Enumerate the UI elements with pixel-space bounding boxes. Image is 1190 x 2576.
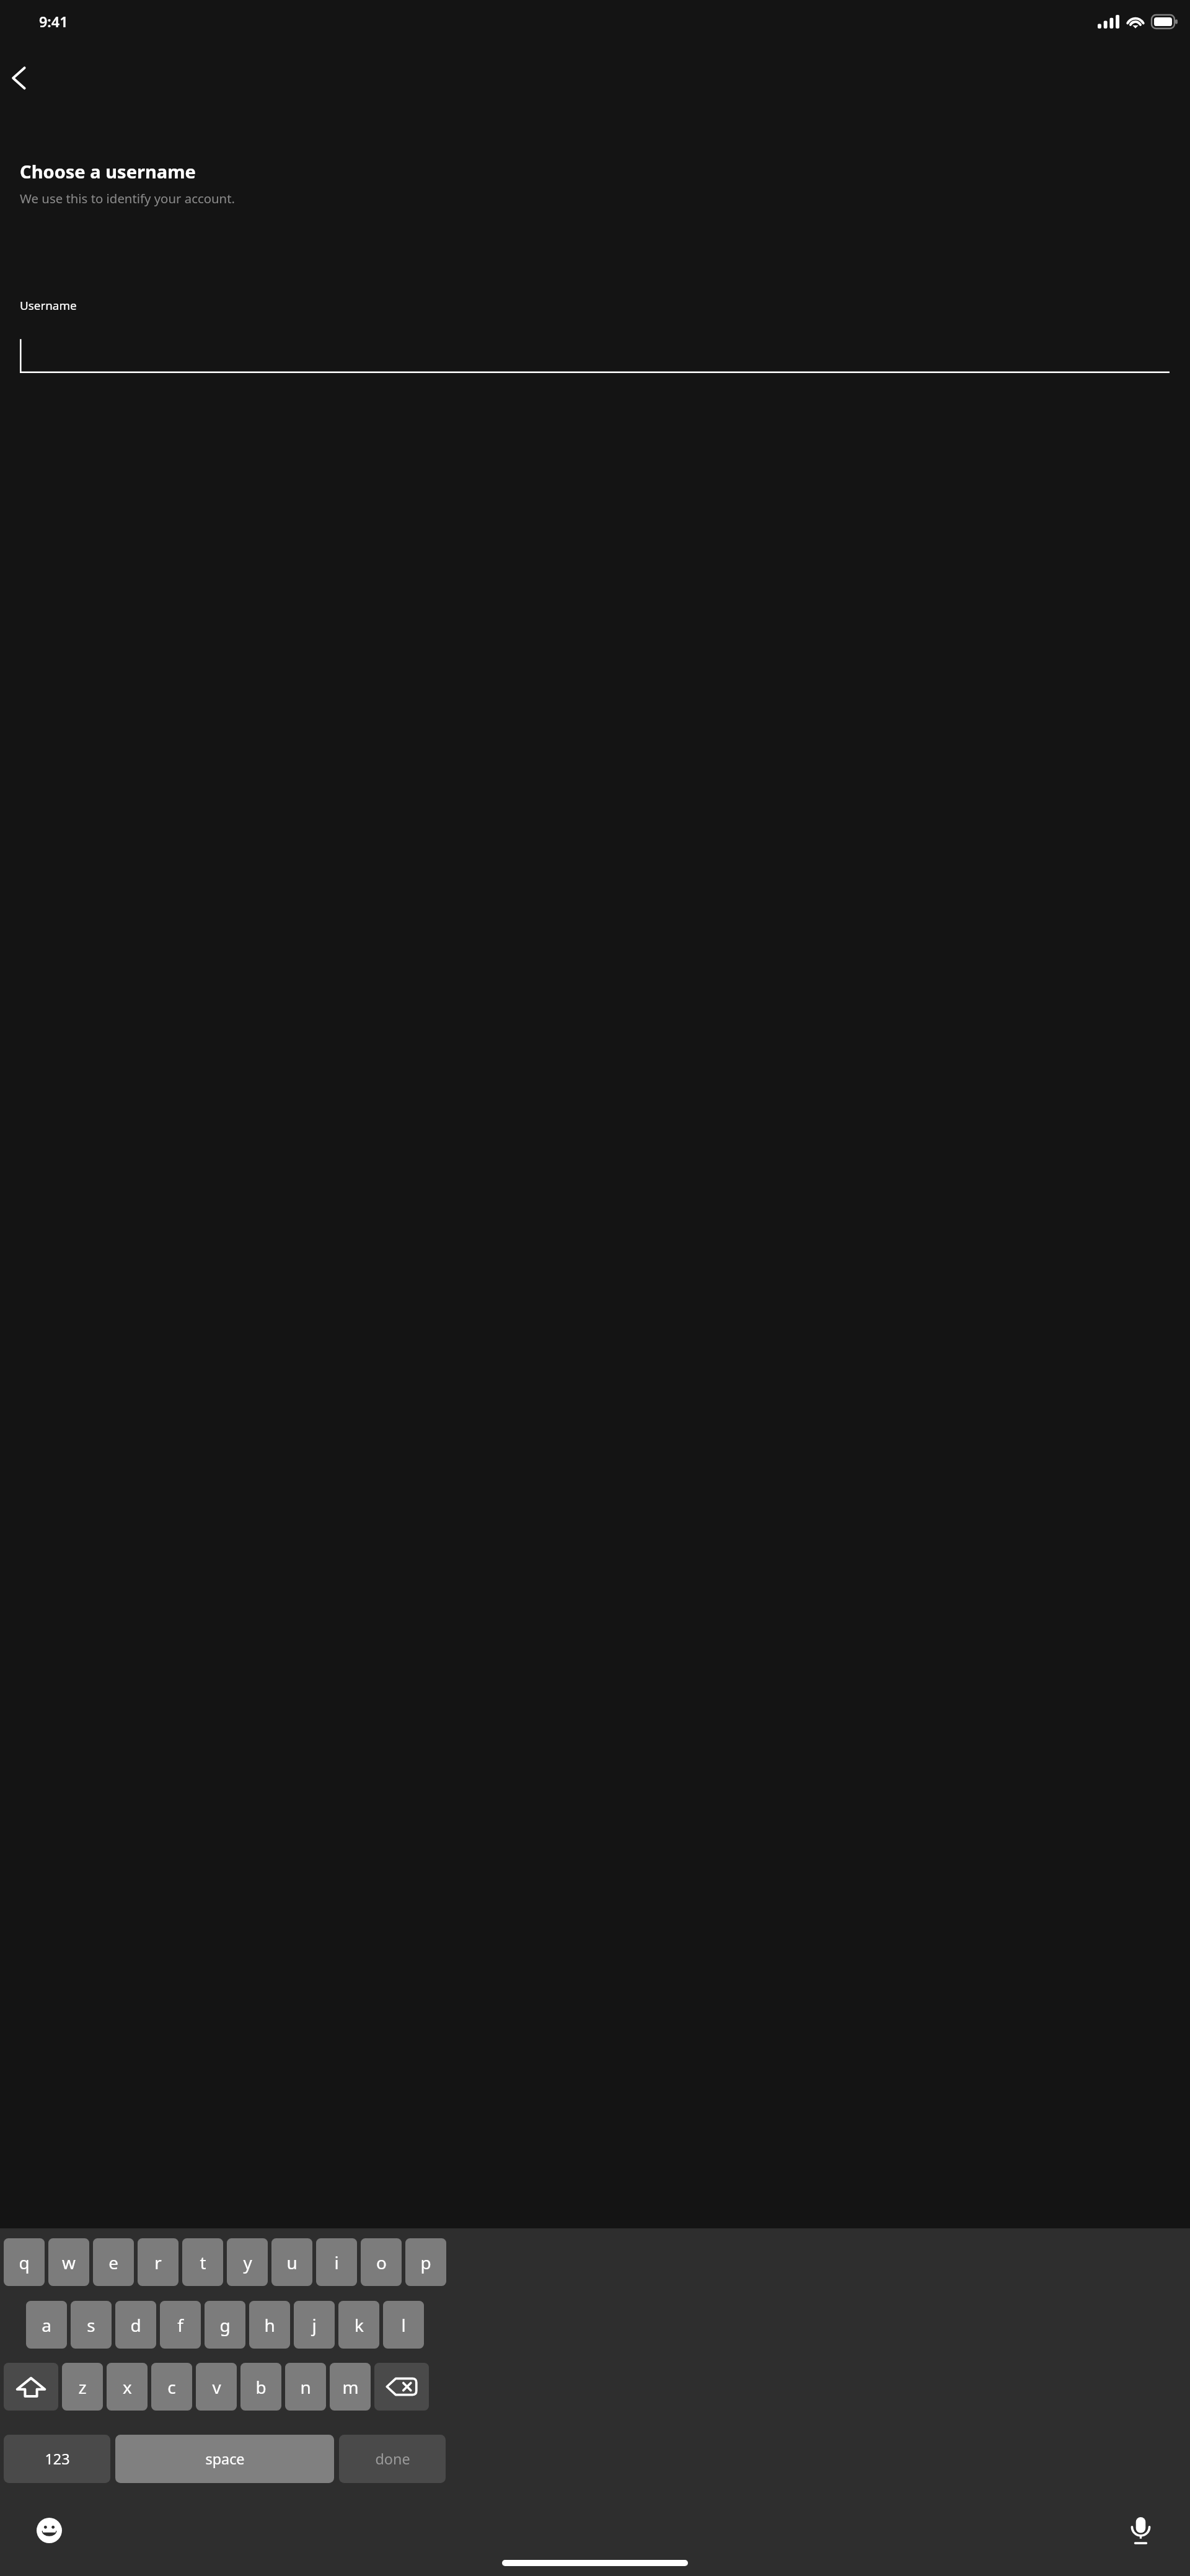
staticText: i	[334, 2251, 339, 2274]
button[interactable]: w	[48, 2238, 89, 2286]
button[interactable]: d	[115, 2301, 156, 2349]
staticText: s	[87, 2313, 95, 2337]
staticText: u	[286, 2251, 297, 2274]
staticText: o	[376, 2251, 387, 2274]
staticText: m	[342, 2375, 359, 2399]
button[interactable]: space	[115, 2435, 334, 2483]
button[interactable]: s	[71, 2301, 112, 2349]
button[interactable]: Shift	[4, 2363, 58, 2411]
staticText: Username	[20, 297, 77, 314]
staticText: b	[255, 2375, 267, 2399]
button[interactable]: g	[205, 2301, 245, 2349]
staticText: done	[375, 2449, 410, 2469]
staticText: j	[312, 2313, 317, 2337]
staticText: n	[300, 2375, 311, 2399]
staticText: g	[219, 2313, 231, 2337]
staticText: 123	[45, 2449, 70, 2469]
button[interactable]: Voice input	[1126, 2516, 1155, 2545]
button[interactable]: x	[107, 2363, 148, 2411]
button[interactable]: Backspace	[374, 2363, 429, 2411]
staticText: e	[108, 2251, 118, 2274]
button[interactable]: c	[151, 2363, 192, 2411]
staticText: y	[243, 2251, 252, 2274]
staticText: z	[78, 2375, 87, 2399]
staticText: q	[19, 2251, 30, 2274]
staticText: l	[401, 2313, 406, 2337]
staticText: We use this to identify your account.	[20, 190, 235, 207]
staticText: c	[167, 2375, 176, 2399]
button[interactable]: v	[196, 2363, 237, 2411]
staticText: 9:41	[39, 12, 68, 32]
button[interactable]: t	[182, 2238, 223, 2286]
button[interactable]: n	[285, 2363, 326, 2411]
button[interactable]: h	[249, 2301, 290, 2349]
button[interactable]: q	[4, 2238, 45, 2286]
button[interactable]: p	[405, 2238, 446, 2286]
staticText: a	[42, 2313, 51, 2337]
button[interactable]: done	[339, 2435, 446, 2483]
button[interactable]: u	[271, 2238, 312, 2286]
staticText: p	[420, 2251, 431, 2274]
button[interactable]: r	[138, 2238, 178, 2286]
button[interactable]: m	[330, 2363, 371, 2411]
staticText: d	[130, 2313, 141, 2337]
staticText: v	[212, 2375, 221, 2399]
staticText: t	[200, 2251, 206, 2274]
button[interactable]: k	[338, 2301, 379, 2349]
button[interactable]: f	[160, 2301, 201, 2349]
staticText: x	[123, 2375, 132, 2399]
staticText: k	[355, 2313, 364, 2337]
button[interactable]: Back	[3, 63, 34, 94]
staticText: f	[177, 2313, 183, 2337]
staticText: r	[154, 2251, 162, 2274]
button[interactable]: z	[62, 2363, 103, 2411]
staticText: h	[264, 2313, 275, 2337]
button[interactable]: b	[240, 2363, 281, 2411]
staticText: space	[205, 2449, 245, 2469]
button[interactable]: l	[383, 2301, 424, 2349]
staticText: Choose a username	[20, 159, 196, 184]
button[interactable]: Emoji	[35, 2516, 64, 2545]
button[interactable]: a	[26, 2301, 67, 2349]
button[interactable]: 123	[4, 2435, 110, 2483]
button[interactable]: e	[93, 2238, 134, 2286]
staticText: w	[62, 2251, 76, 2274]
button[interactable]: j	[294, 2301, 335, 2349]
button[interactable]: Username text field	[20, 338, 1170, 373]
button[interactable]: i	[316, 2238, 357, 2286]
button[interactable]: y	[227, 2238, 268, 2286]
button[interactable]: o	[361, 2238, 402, 2286]
